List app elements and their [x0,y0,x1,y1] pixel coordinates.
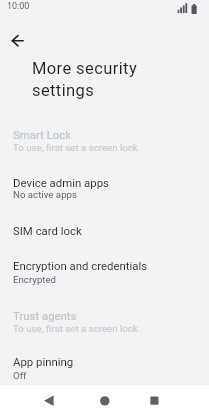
staticText: No active apps [13,189,78,200]
staticText: 10:00 [7,1,30,12]
button[interactable]: Device admin apps [0,164,209,212]
staticText: Encrypted [13,274,57,285]
staticText: Encryption and credentials [13,259,148,272]
staticText: Smart Lock [13,128,72,141]
button[interactable]: App pinning [0,343,209,385]
button[interactable]: Encryption and credentials [0,247,209,298]
button[interactable] [34,386,64,416]
staticText: More security [32,59,138,78]
button[interactable] [90,386,120,416]
button[interactable]: Smart Lock [0,116,209,165]
staticText: App pinning [13,355,74,368]
staticText: SIM card lock [13,224,82,237]
staticText: Trust agents [13,309,77,322]
staticText: Off [13,370,27,381]
button[interactable]: Trust agents [0,297,209,342]
button[interactable] [5,29,29,53]
staticText: To use, first set a screen lock [13,142,138,153]
button[interactable]: SIM card lock [0,212,209,247]
button[interactable] [139,386,169,416]
staticText: Device admin apps [13,176,109,189]
staticText: To use, first set a screen lock [13,323,138,334]
staticText: settings [32,81,95,100]
